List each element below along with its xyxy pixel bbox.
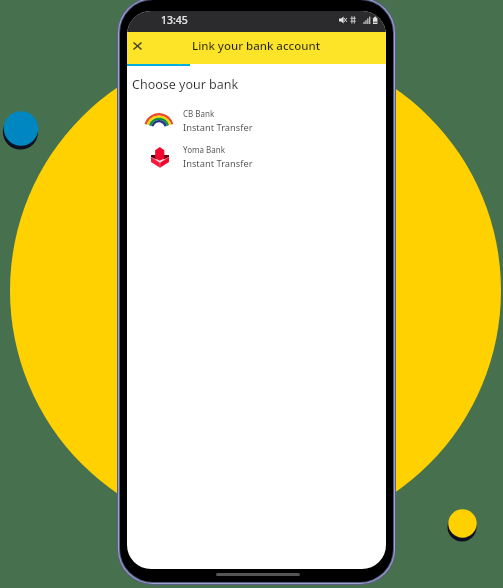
button[interactable]: Yoma Bank bbox=[127, 145, 386, 179]
staticText: Choose your bank bbox=[132, 76, 239, 93]
button[interactable]: CB Bank bbox=[127, 109, 386, 143]
staticText: Link your bank account bbox=[192, 38, 321, 54]
staticText: Yoma Bank bbox=[183, 144, 225, 155]
staticText: 13:45 bbox=[161, 13, 188, 27]
button[interactable]: Close bbox=[127, 35, 148, 57]
staticText: Instant Transfer bbox=[183, 157, 253, 170]
staticText: CB Bank bbox=[183, 108, 215, 119]
staticText: Instant Transfer bbox=[183, 121, 253, 134]
